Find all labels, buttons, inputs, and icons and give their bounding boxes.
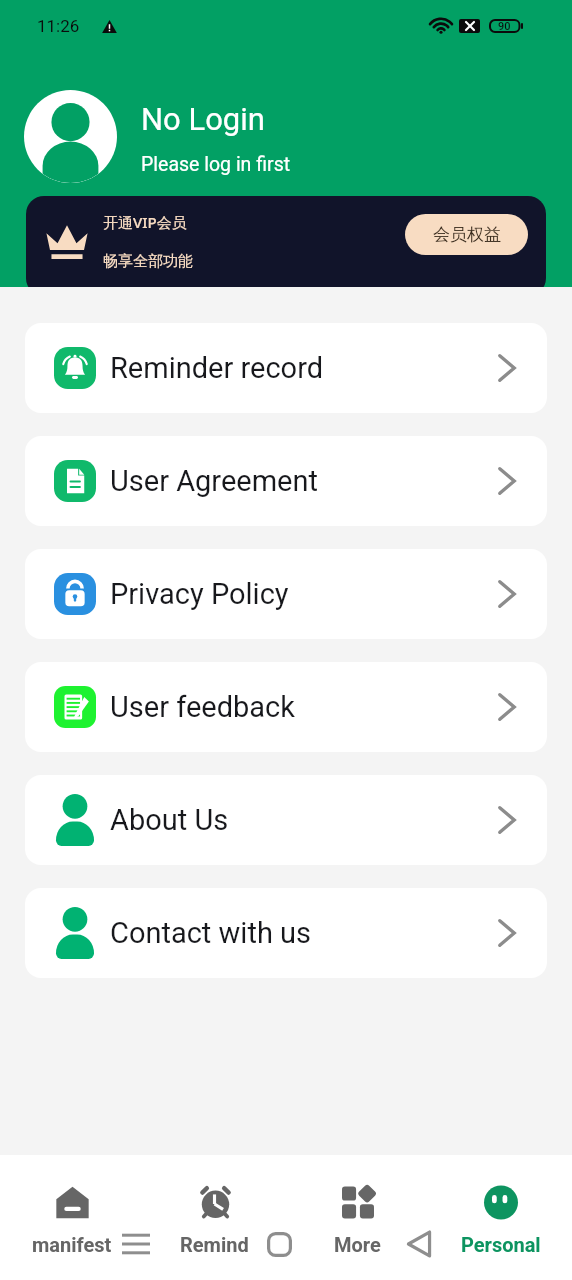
staticText: More — [334, 1233, 381, 1256]
staticText: No Login — [141, 101, 265, 137]
button[interactable]: 开通VIP会员 — [26, 196, 546, 287]
staticText: 畅享全部功能 — [103, 252, 193, 271]
button[interactable]: About Us — [25, 775, 547, 865]
staticText: 11:26 — [37, 16, 80, 36]
staticText: About Us — [110, 803, 229, 837]
button[interactable]: Recent apps — [114, 1222, 158, 1266]
button[interactable]: 会员权益 — [405, 214, 528, 255]
staticText: Privacy Policy — [110, 577, 289, 611]
button[interactable]: manifest — [0, 1186, 143, 1264]
staticText: 开通VIP会员 — [103, 212, 187, 232]
staticText: 会员权益 — [433, 224, 501, 245]
button[interactable]: Remind — [143, 1186, 286, 1264]
button[interactable]: User Agreement — [25, 436, 547, 526]
button[interactable]: Privacy Policy — [25, 549, 547, 639]
staticText: User Agreement — [110, 464, 318, 498]
button[interactable]: Personal — [429, 1186, 572, 1264]
staticText: 90 — [498, 20, 511, 33]
button[interactable]: Home — [257, 1222, 301, 1266]
staticText: Personal — [461, 1233, 541, 1256]
staticText: User feedback — [110, 690, 295, 724]
button[interactable]: More — [286, 1186, 429, 1264]
staticText: manifest — [32, 1233, 112, 1256]
staticText: Contact with us — [110, 916, 312, 950]
staticText: Remind — [180, 1233, 249, 1256]
button[interactable]: Contact with us — [25, 888, 547, 978]
staticText: Reminder record — [110, 351, 324, 385]
button[interactable]: Reminder record — [25, 323, 547, 413]
staticText: Please log in first — [141, 153, 291, 176]
button[interactable]: User feedback — [25, 662, 547, 752]
button[interactable]: Back — [397, 1222, 441, 1266]
